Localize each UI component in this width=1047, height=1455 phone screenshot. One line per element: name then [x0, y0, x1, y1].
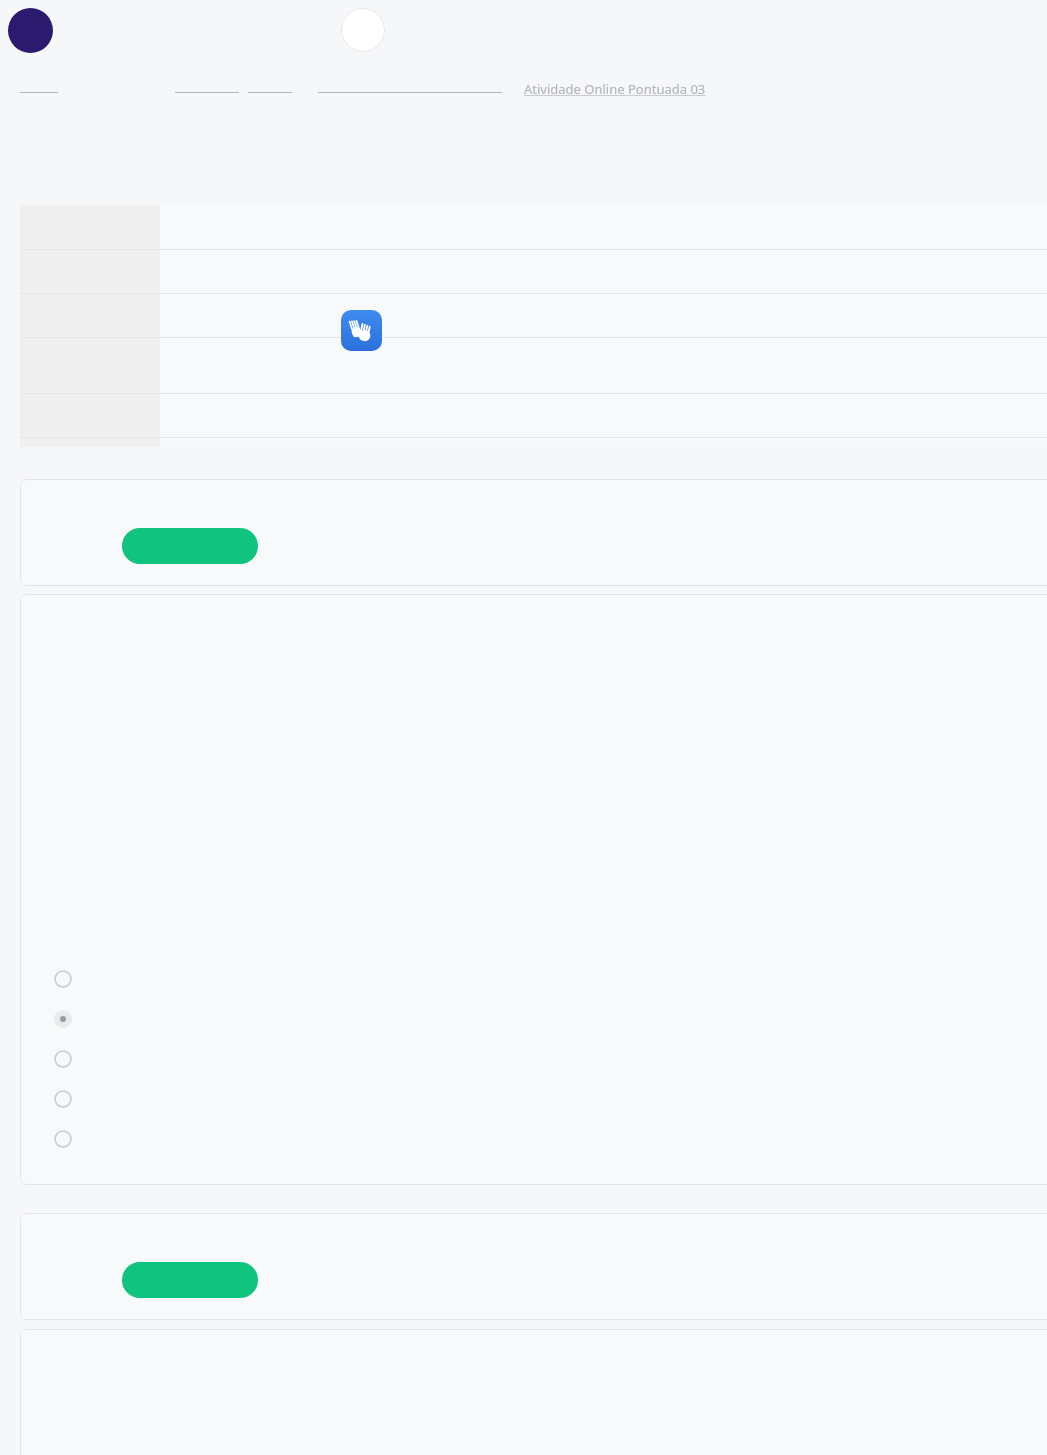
staticText: Atividade Online Pontuada 03 — [524, 80, 706, 98]
button[interactable]: Menu — [341, 8, 385, 52]
button[interactable] — [53, 1009, 1047, 1029]
button[interactable]: Atividade Online Pontuada 03 — [524, 80, 706, 98]
button[interactable]: Submit — [122, 1262, 258, 1298]
button[interactable]: Submit — [20, 479, 1047, 586]
button[interactable]: VLibras accessibility — [341, 310, 382, 351]
button[interactable]: Submit — [122, 528, 258, 564]
button[interactable]: Submit — [20, 1213, 1047, 1320]
button[interactable]: User account — [8, 8, 53, 53]
